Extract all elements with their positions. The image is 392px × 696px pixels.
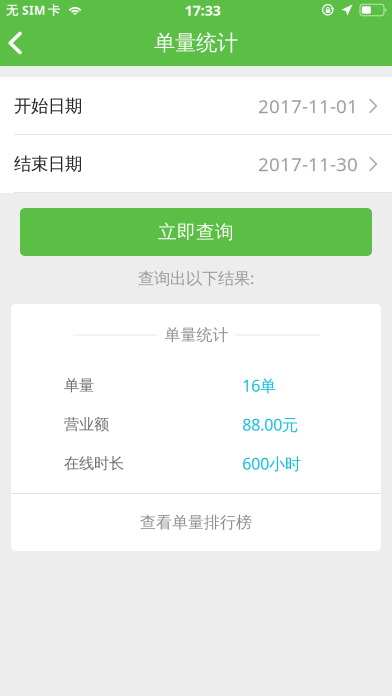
button[interactable]: 立即查询 <box>20 208 372 256</box>
staticText: 结束日期 <box>14 153 82 175</box>
staticText: 17:33 <box>184 0 220 20</box>
staticText: 营业额 <box>64 415 109 434</box>
button[interactable]: 开始日期 <box>0 77 392 135</box>
staticText: 2017-11-30 <box>258 151 358 177</box>
button[interactable]: 查看单量排行榜 <box>11 494 381 551</box>
staticText: 在线时长 <box>64 454 124 473</box>
staticText: 查询出以下结果: <box>138 267 254 289</box>
button[interactable]: 结束日期 <box>0 135 392 193</box>
staticText: 16单 <box>242 375 276 396</box>
staticText: 600小时 <box>242 453 301 474</box>
button[interactable]: Back <box>0 21 44 65</box>
staticText: 单量统计 <box>154 30 238 56</box>
staticText: 开始日期 <box>14 95 82 117</box>
staticText: 2017-11-01 <box>258 93 358 119</box>
staticText: 88.00元 <box>242 414 298 435</box>
staticText: 单量统计 <box>164 325 228 345</box>
staticText: 无 SIM 卡 <box>6 2 60 18</box>
staticText: 立即查询 <box>158 220 234 244</box>
staticText: 单量 <box>64 376 94 395</box>
staticText: 查看单量排行榜 <box>140 512 252 533</box>
